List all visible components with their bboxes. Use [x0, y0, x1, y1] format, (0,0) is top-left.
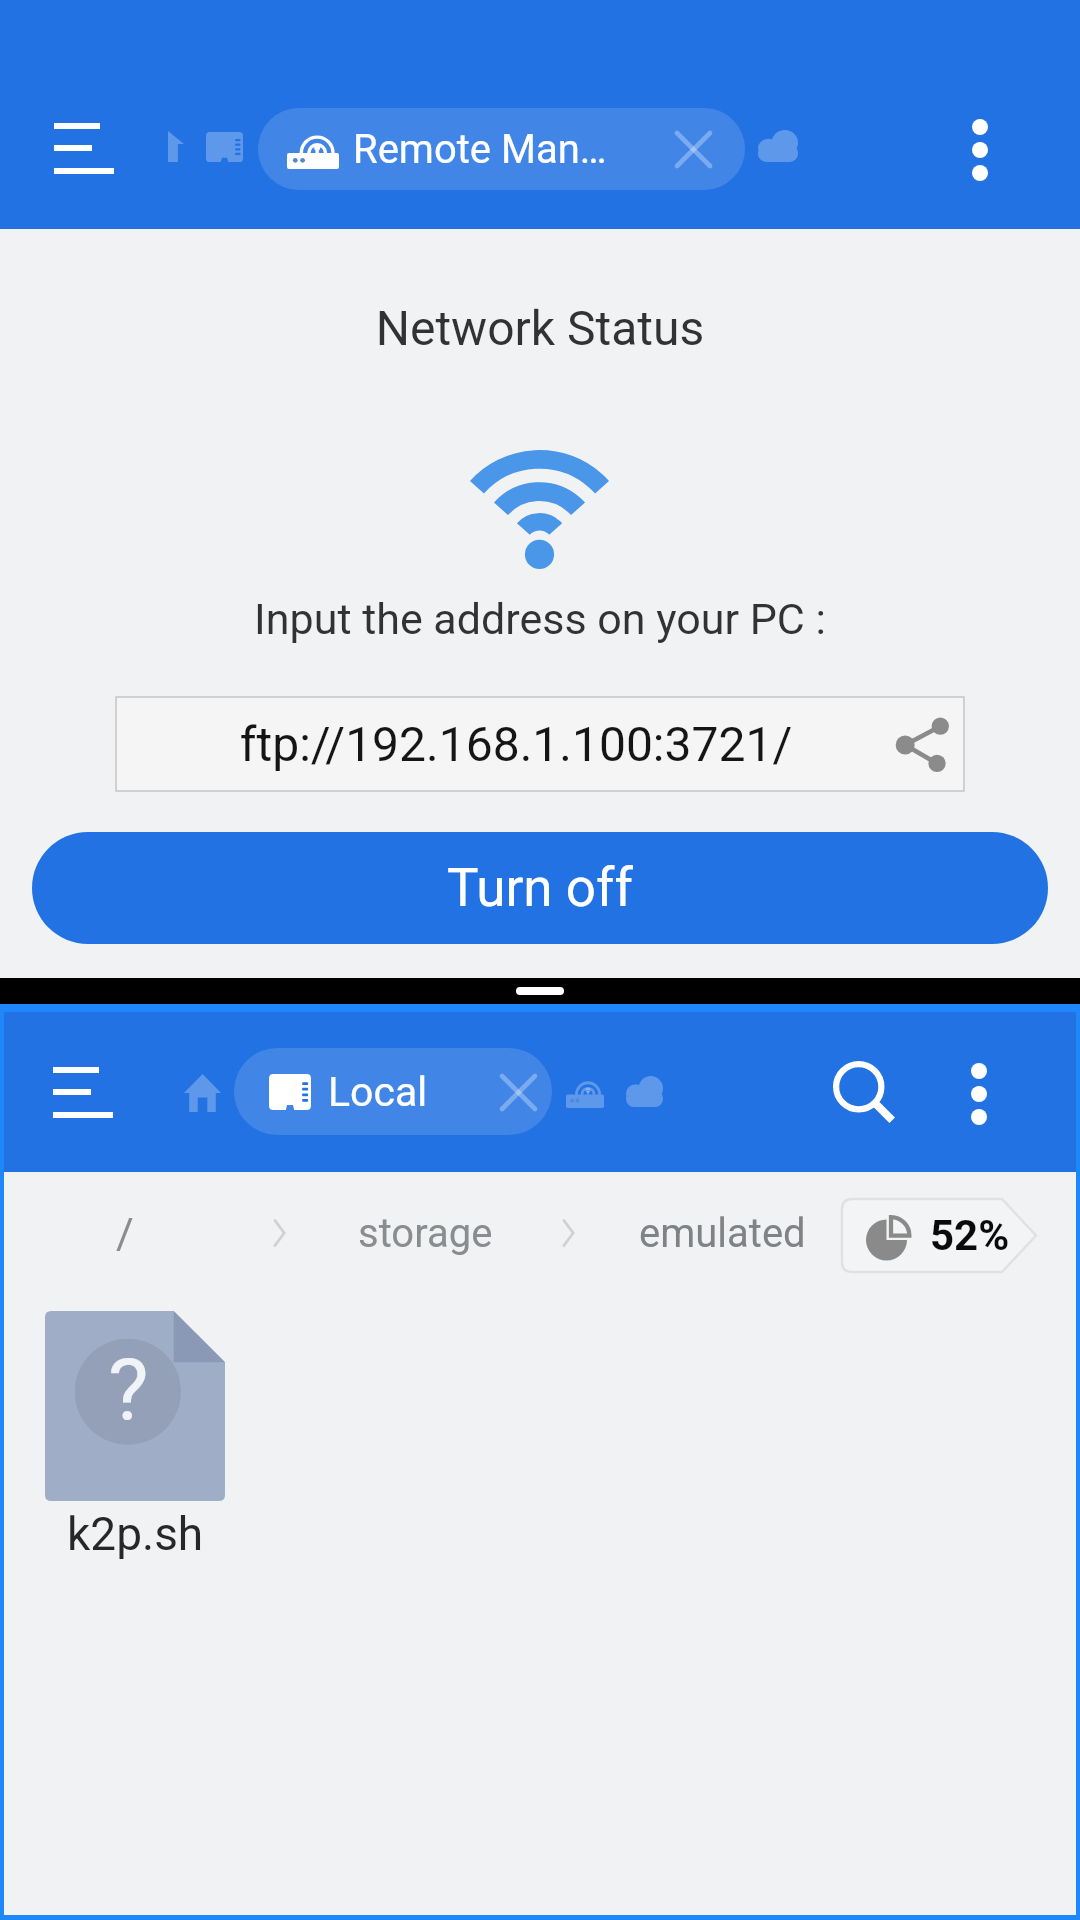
button[interactable]: emulated	[639, 1210, 806, 1257]
button[interactable]: /	[116, 1208, 134, 1258]
button[interactable]: Remote Man…	[258, 108, 745, 190]
staticText: Local	[328, 1068, 428, 1116]
staticText: Remote Man…	[353, 126, 607, 173]
button[interactable]: Share	[881, 702, 965, 786]
button[interactable]: Menu	[39, 1052, 127, 1136]
staticText: ?	[108, 1340, 149, 1441]
button[interactable]: Close tab	[655, 111, 731, 187]
button[interactable]: ftp://192.168.1.100:3721/	[115, 696, 965, 792]
staticText: Turn off	[447, 857, 633, 919]
button[interactable]: Cloud drive tab	[758, 130, 798, 162]
button[interactable]: ?	[45, 1311, 225, 1561]
button[interactable]: Home	[166, 1052, 238, 1134]
button[interactable]: Menu	[40, 108, 128, 192]
staticText: 52%	[930, 1211, 1010, 1260]
button[interactable]: Search	[816, 1044, 912, 1140]
button[interactable]: Local storage tab	[206, 132, 243, 162]
button[interactable]: Turn off	[32, 832, 1048, 944]
button[interactable]: More options	[937, 1048, 1021, 1140]
staticText: Network Status	[0, 300, 1080, 356]
staticText: ftp://192.168.1.100:3721/	[133, 716, 899, 772]
button[interactable]: Remote manager tab	[566, 1074, 604, 1108]
button[interactable]: Local	[234, 1048, 552, 1135]
button[interactable]: Cloud drive tab	[626, 1076, 663, 1107]
button[interactable]: Close tab	[484, 1058, 552, 1126]
button[interactable]: More options	[938, 104, 1022, 196]
staticText: k2p.sh	[67, 1507, 204, 1561]
staticText: Input the address on your PC :	[0, 594, 1080, 644]
button[interactable]: Home tab	[168, 131, 184, 162]
button[interactable]: storage	[358, 1210, 493, 1257]
button[interactable]: 52%	[842, 1199, 1036, 1272]
